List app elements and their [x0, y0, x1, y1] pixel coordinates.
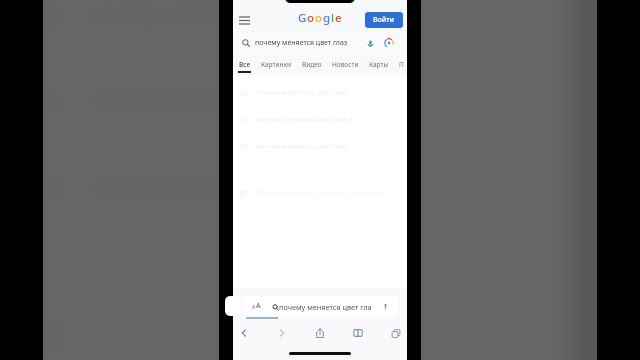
staticText: почему меняется цвет глаз у — [84, 85, 398, 117]
staticText: G — [298, 10, 307, 26]
button[interactable]: Voice search — [366, 39, 375, 48]
button[interactable]: А — [244, 296, 399, 316]
staticText: Карты — [369, 60, 389, 69]
staticText: Видео — [302, 60, 322, 69]
button[interactable]: Поиск в интернете «почему цвет глаз» — [43, 309, 570, 360]
button[interactable]: Картинки — [261, 54, 302, 69]
staticText: почему меняется цвет гла — [279, 302, 372, 312]
button[interactable]: Tabs — [389, 326, 403, 340]
staticText: почему меняется цвет глаз — [255, 142, 348, 152]
button[interactable]: Все — [238, 54, 261, 73]
button[interactable]: Пок — [399, 54, 407, 69]
staticText: почему меняется цвет глаз — [255, 38, 348, 48]
staticText: почему меняется цвет глаз — [84, 171, 382, 203]
staticText: Картинки — [261, 60, 292, 69]
staticText: почему меняется цвет глаз — [255, 88, 348, 98]
staticText: Новости — [332, 60, 359, 69]
button[interactable]: Forward — [275, 326, 289, 340]
button[interactable]: Карты — [369, 54, 399, 69]
button[interactable]: Войти — [365, 12, 403, 28]
button[interactable]: почему меняется цвет глаз — [236, 34, 404, 52]
button[interactable]: Menu — [235, 11, 253, 29]
staticText: Все — [239, 60, 251, 69]
button[interactable]: Видео — [302, 54, 332, 69]
staticText: o — [315, 10, 323, 26]
button[interactable]: Bookmarks — [351, 326, 365, 340]
staticText: l — [331, 10, 335, 26]
staticText: Поиск в интернете «почему цвет глаз» — [78, 319, 497, 351]
staticText: почему меняется цвет глаз у — [255, 115, 353, 125]
staticText: g — [323, 10, 331, 26]
button[interactable]: Share — [313, 326, 327, 340]
button[interactable]: Google Lens — [384, 38, 394, 48]
staticText: почему меняется цвет глаз — [84, 0, 382, 31]
staticText: o — [307, 10, 315, 26]
staticText: А — [252, 304, 256, 311]
staticText: Войти — [373, 15, 395, 25]
button[interactable]: почему меняется цвет глаз у — [43, 56, 570, 143]
button[interactable]: Новости — [332, 54, 369, 69]
button[interactable]: Back — [237, 326, 251, 340]
button[interactable]: почему меняется цвет глаз — [43, 143, 570, 229]
staticText: А — [256, 301, 261, 311]
staticText: e — [335, 10, 342, 26]
button[interactable]: почему меняется цвет глаз — [43, 0, 570, 56]
